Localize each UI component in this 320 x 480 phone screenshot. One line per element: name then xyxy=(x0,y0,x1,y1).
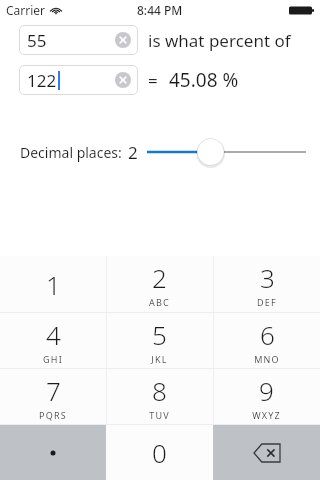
button[interactable]: Decimal point xyxy=(0,425,106,480)
staticText: DEF xyxy=(257,296,277,308)
staticText: is what percent of xyxy=(148,29,291,52)
button[interactable] xyxy=(147,137,306,167)
staticText: ABC xyxy=(149,296,170,308)
staticText: 0 xyxy=(152,435,167,470)
staticText: 9 xyxy=(259,373,274,408)
staticText: WXYZ xyxy=(252,409,281,421)
staticText: PQRS xyxy=(39,409,67,421)
staticText: 8:44 PM xyxy=(137,2,183,18)
button[interactable]: 3 xyxy=(213,256,320,312)
staticText: TUV xyxy=(149,409,170,421)
staticText: 2 xyxy=(128,141,138,164)
button[interactable]: 8 xyxy=(106,369,213,424)
staticText: 122 xyxy=(27,69,57,92)
button[interactable]: 122 xyxy=(19,65,138,95)
staticText: 1 xyxy=(46,267,61,302)
staticText: 5 xyxy=(152,317,167,352)
button[interactable]: 1 xyxy=(0,256,106,312)
staticText: 7 xyxy=(46,373,61,408)
staticText: JKL xyxy=(151,353,168,365)
button[interactable]: 5 xyxy=(106,313,213,368)
button[interactable]: 9 xyxy=(213,369,320,424)
button[interactable]: 55 xyxy=(19,25,138,55)
staticText: Carrier xyxy=(6,2,46,18)
button[interactable]: Backspace xyxy=(213,425,320,480)
button[interactable]: Clear xyxy=(115,72,131,88)
button[interactable]: Clear xyxy=(115,32,131,48)
staticText: 3 xyxy=(260,260,275,295)
staticText: 8 xyxy=(152,373,167,408)
staticText: = xyxy=(148,69,158,92)
staticText: 2 xyxy=(152,260,167,295)
staticText: 45.08 % xyxy=(169,67,239,93)
staticText: 4 xyxy=(46,317,61,352)
staticText: GHI xyxy=(43,353,63,365)
staticText: 55 xyxy=(27,29,47,52)
button[interactable]: 7 xyxy=(0,369,106,424)
staticText: Decimal places: xyxy=(20,143,122,162)
staticText: MNO xyxy=(254,353,280,365)
staticText: 6 xyxy=(260,317,275,352)
button[interactable]: 4 xyxy=(0,313,106,368)
button[interactable]: 6 xyxy=(213,313,320,368)
button[interactable]: 2 xyxy=(106,256,213,312)
button[interactable]: 0 xyxy=(106,425,213,480)
